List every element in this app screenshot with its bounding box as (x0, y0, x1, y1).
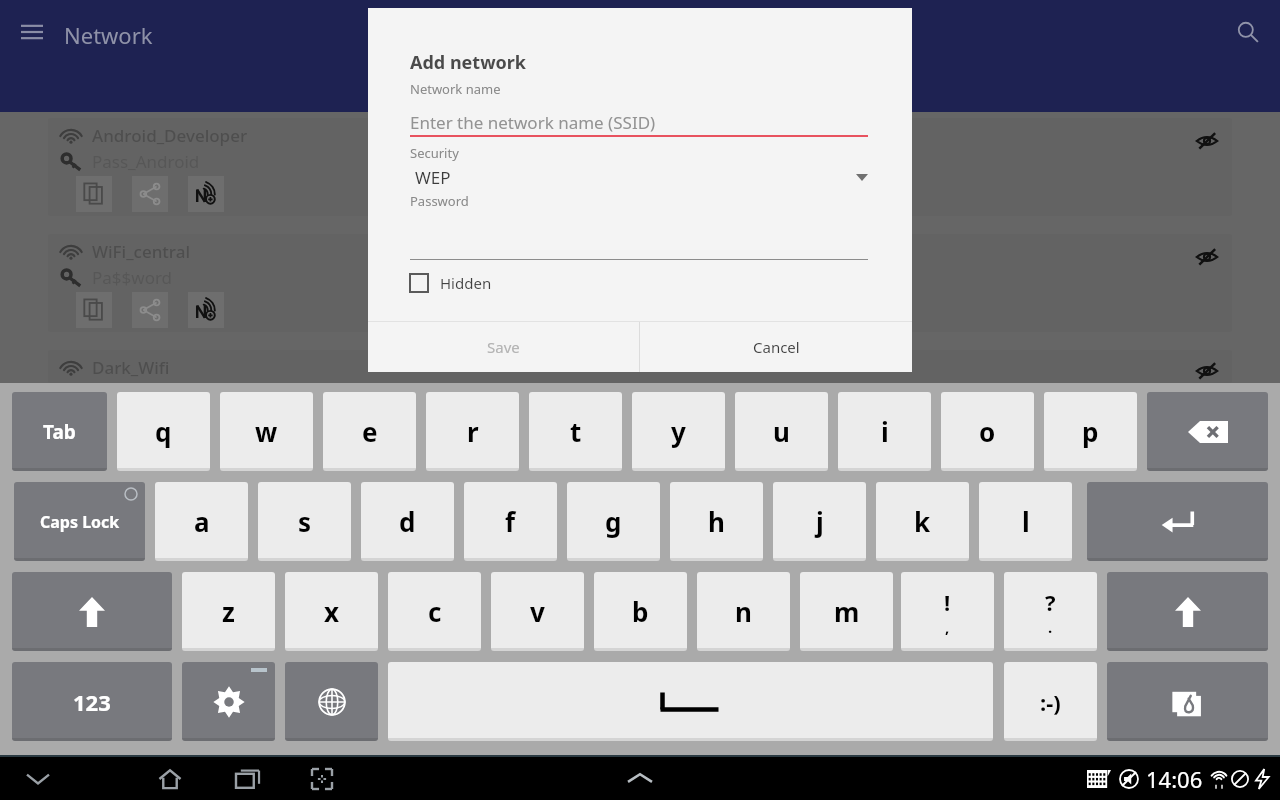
button[interactable]: Tab (12, 392, 107, 471)
staticText: Pass_Android (92, 150, 200, 173)
button[interactable]: v (491, 572, 584, 651)
button[interactable]: Recent apps (228, 759, 268, 799)
button[interactable]: Share network (132, 292, 168, 328)
staticText: Android_Developer (92, 124, 248, 147)
staticText: 123 (73, 687, 111, 717)
button[interactable]: d (361, 482, 454, 561)
button[interactable]: Screenshot (302, 759, 342, 799)
button[interactable]: ! (901, 572, 994, 651)
staticText: e (362, 414, 378, 449)
staticText: l (1022, 504, 1030, 539)
button[interactable]: Shift (12, 572, 172, 651)
button[interactable]: Open navigation menu (10, 10, 54, 54)
button[interactable]: Backspace (1147, 392, 1268, 471)
staticText: c (428, 594, 442, 629)
staticText: 14:06 (1146, 764, 1203, 794)
button[interactable]: e (323, 392, 416, 471)
staticText: o (979, 414, 996, 449)
button[interactable]: Enter (1087, 482, 1268, 561)
staticText: z (222, 594, 235, 629)
staticText: n (735, 594, 752, 629)
staticText: Caps Lock (40, 511, 120, 533)
button[interactable]: r (426, 392, 519, 471)
button[interactable]: a (155, 482, 248, 561)
button[interactable]: s (258, 482, 351, 561)
staticText: ? (1045, 587, 1056, 617)
staticText: j (816, 504, 824, 539)
button[interactable]: i (838, 392, 931, 471)
staticText: b (632, 594, 649, 629)
staticText: Add network (410, 50, 527, 75)
button[interactable]: z (182, 572, 275, 651)
button[interactable]: Copy password (76, 176, 112, 212)
staticText: Password (410, 192, 469, 210)
button[interactable]: Save (368, 322, 639, 372)
button[interactable]: o (941, 392, 1034, 471)
button[interactable]: w (220, 392, 313, 471)
staticText: y (671, 414, 686, 449)
button[interactable]: Settings (182, 662, 275, 741)
staticText: d (399, 504, 416, 539)
button[interactable]: Caps Lock (14, 482, 145, 561)
button[interactable]: u (735, 392, 828, 471)
button[interactable]: Attach (1107, 662, 1268, 741)
staticText: x (324, 594, 340, 629)
button[interactable]: l (979, 482, 1072, 561)
button[interactable]: Connect with NFC (188, 292, 224, 328)
button[interactable]: Search (1226, 10, 1270, 54)
button[interactable]: q (117, 392, 210, 471)
button[interactable]: f (464, 482, 557, 561)
button[interactable]: Space (388, 662, 993, 741)
button[interactable]: k (876, 482, 969, 561)
staticText: Network (64, 20, 153, 50)
button[interactable]: p (1044, 392, 1137, 471)
button[interactable]: t (529, 392, 622, 471)
button[interactable]: Change language (285, 662, 378, 741)
button[interactable]: x (285, 572, 378, 651)
staticText: Security (410, 144, 459, 162)
staticText: h (708, 504, 725, 539)
button[interactable]: Connect with NFC (188, 176, 224, 212)
button[interactable]: c (388, 572, 481, 651)
button[interactable]: Show password (1192, 358, 1222, 383)
staticText: Dark_Wifi (92, 356, 170, 379)
staticText: :-) (1040, 687, 1061, 717)
staticText: Enter the network name (SSID) (410, 111, 656, 134)
staticText: a (194, 504, 210, 539)
button[interactable]: Expand navigation (618, 757, 662, 800)
button[interactable]: Show password (1192, 126, 1222, 156)
button[interactable]: :-) (1004, 662, 1097, 741)
button[interactable]: ? (1004, 572, 1097, 651)
button[interactable]: WiFi_central (48, 234, 1232, 332)
button[interactable]: Copy password (76, 292, 112, 328)
button[interactable]: b (594, 572, 687, 651)
button[interactable]: Enter the network name (SSID) (410, 109, 868, 135)
button[interactable]: Home (150, 759, 190, 799)
button[interactable]: j (773, 482, 866, 561)
staticText: ! (944, 587, 951, 617)
staticText: Tab (43, 419, 76, 445)
button[interactable]: Dark_Wifi (48, 350, 1232, 383)
staticText: q (155, 414, 172, 449)
button[interactable]: m (800, 572, 893, 651)
button[interactable]: h (670, 482, 763, 561)
button[interactable]: n (697, 572, 790, 651)
button[interactable]: g (567, 482, 660, 561)
staticText: Save (487, 337, 520, 357)
button[interactable]: Share network (132, 176, 168, 212)
button[interactable]: Hide keyboard (18, 759, 58, 799)
button[interactable]: Cancel (640, 322, 912, 372)
staticText: WEP (415, 166, 451, 189)
staticText: WiFi_central (92, 240, 190, 263)
staticText: p (1082, 414, 1099, 449)
staticText: i (881, 414, 889, 449)
button[interactable]: Android_Developer (48, 118, 1232, 216)
button[interactable]: Hidden (410, 273, 492, 293)
button[interactable]: WEP (410, 165, 868, 189)
staticText: u (773, 414, 790, 449)
button[interactable]: y (632, 392, 725, 471)
button[interactable]: Shift (1107, 572, 1268, 651)
button[interactable]: Show password (1192, 242, 1222, 272)
button[interactable]: 123 (12, 662, 172, 741)
